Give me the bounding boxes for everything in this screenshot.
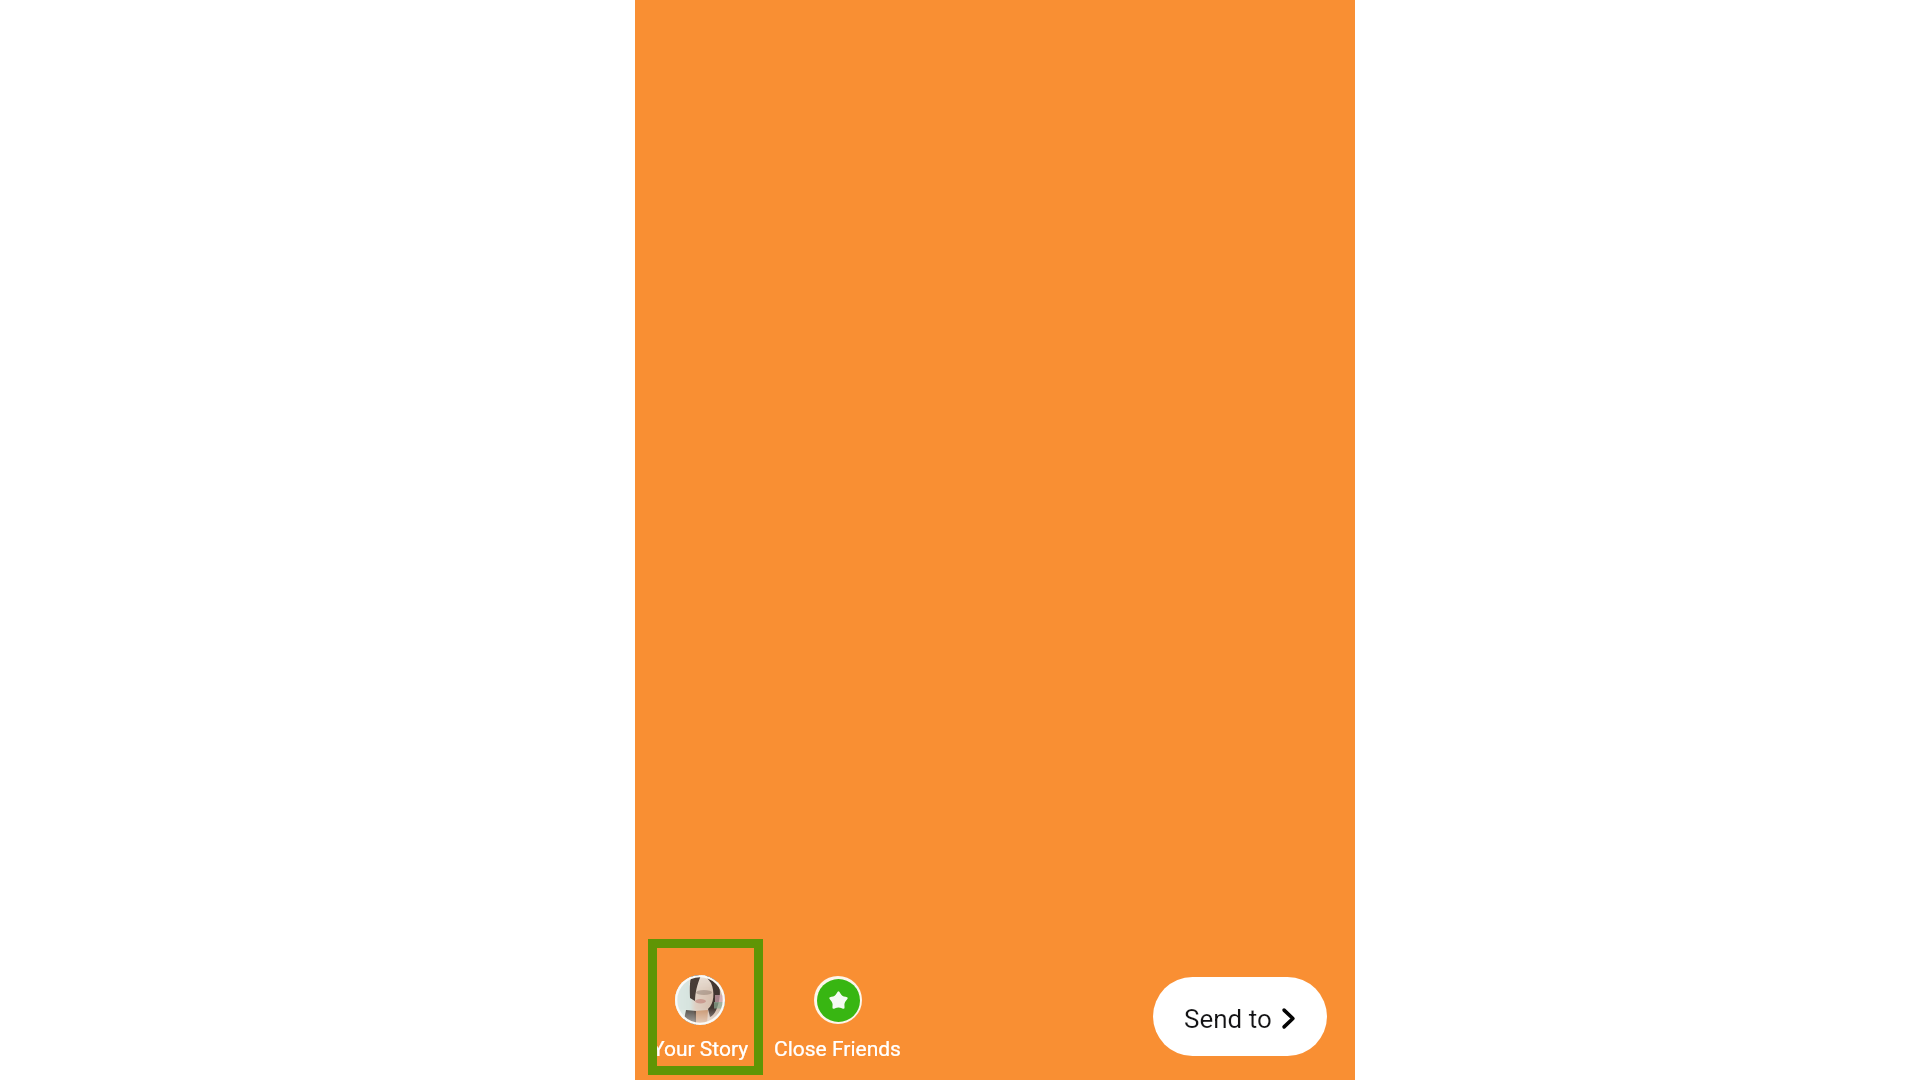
button[interactable]: Your profile photo [648,939,763,1075]
staticText: Close Friends [774,1037,901,1062]
staticText: Your Story [652,1037,749,1062]
button[interactable]: Send to [1153,977,1327,1056]
button[interactable]: Close Friends [774,968,901,1074]
staticText: Send to [1184,1004,1272,1034]
other: Choose recipients [1282,1008,1295,1029]
other: Your profile photo [675,975,725,1025]
